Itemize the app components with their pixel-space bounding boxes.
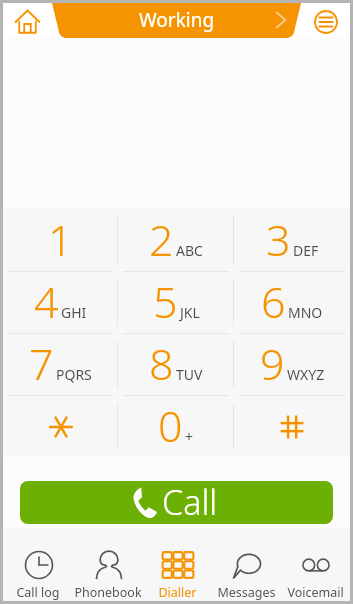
staticText: Voicemail <box>287 584 344 601</box>
button[interactable]: Call log <box>3 529 73 601</box>
button[interactable]: 0 <box>118 396 234 457</box>
staticText: Call log <box>16 584 60 601</box>
staticText: 9 <box>260 334 285 393</box>
button[interactable]: 5 <box>118 272 234 333</box>
staticText: 0 <box>158 396 183 455</box>
button[interactable]: Dialler <box>143 529 212 601</box>
staticText: DEF <box>293 241 319 260</box>
staticText: 8 <box>149 334 174 393</box>
button[interactable]: Voicemail <box>281 529 350 601</box>
staticText: TUV <box>176 365 203 384</box>
other: Voicemail <box>300 549 331 580</box>
other: Call log <box>23 549 54 580</box>
button[interactable]: 1 <box>3 209 118 271</box>
button[interactable]: 2 <box>118 209 234 271</box>
button[interactable]: 8 <box>118 334 234 395</box>
button[interactable]: Call <box>20 481 333 524</box>
staticText: GHI <box>61 303 87 322</box>
staticText: ABC <box>176 241 203 260</box>
button[interactable]: Menu <box>310 6 342 38</box>
button[interactable]: Home <box>10 4 44 38</box>
staticText: WXYZ <box>287 365 325 384</box>
button[interactable]: Messages <box>212 529 281 601</box>
button[interactable]: 9 <box>234 334 350 395</box>
button[interactable]: 6 <box>234 272 350 333</box>
staticText: PQRS <box>56 365 92 384</box>
staticText: + <box>185 427 194 446</box>
staticText: 5 <box>153 272 178 331</box>
staticText: 4 <box>34 272 59 331</box>
staticText: 3 <box>266 210 291 269</box>
button[interactable] <box>3 396 118 457</box>
other: Phonebook <box>93 549 124 580</box>
button[interactable] <box>234 396 350 457</box>
staticText: Phonebook <box>74 584 142 601</box>
button[interactable]: 4 <box>3 272 118 333</box>
button[interactable]: Phonebook <box>73 529 143 601</box>
staticText: Dialler <box>158 584 197 601</box>
staticText: 2 <box>149 210 174 269</box>
staticText: Messages <box>217 584 276 601</box>
button[interactable]: 3 <box>234 209 350 271</box>
staticText: 6 <box>261 272 286 331</box>
staticText: Working <box>139 7 215 33</box>
staticText: MNO <box>288 303 323 322</box>
staticText: 7 <box>29 334 54 393</box>
staticText: Call <box>162 481 218 522</box>
staticText: JKL <box>180 303 200 322</box>
other: Messages <box>231 549 262 580</box>
button[interactable]: 7 <box>3 334 118 395</box>
button[interactable]: Next <box>269 8 293 32</box>
staticText: 1 <box>48 210 73 269</box>
other: Dialler <box>162 549 193 580</box>
